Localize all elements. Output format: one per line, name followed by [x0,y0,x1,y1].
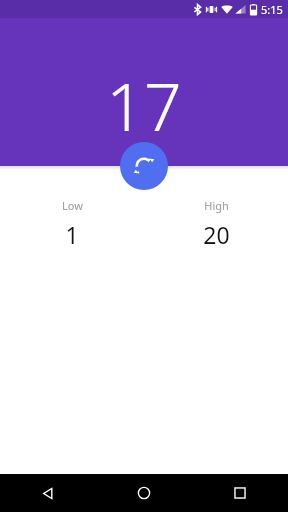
button[interactable]: High [144,198,288,250]
staticText: High [204,198,229,213]
button[interactable]: Recent apps [192,474,288,512]
button[interactable]: Low [0,198,144,250]
button[interactable]: Refresh [120,142,168,190]
staticText: 17 [106,60,182,150]
staticText: Low [62,198,83,213]
staticText: 5:15 [261,2,283,17]
button[interactable]: Back [0,474,96,512]
staticText: 1 [65,219,79,250]
button[interactable]: Home [96,474,192,512]
staticText: 20 [203,219,230,250]
